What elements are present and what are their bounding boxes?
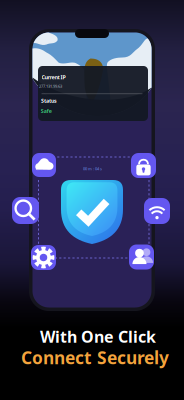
staticText: 00 m : 04 s [83,166,102,171]
staticText: Connect Securely [21,346,169,369]
button[interactable]: Search [12,197,39,224]
staticText: 277.131.99.63 [39,84,62,89]
button[interactable]: Network [144,198,170,224]
staticText: Current IP [42,74,66,81]
button[interactable]: Settings [31,245,56,270]
button[interactable]: Cloud [32,153,56,177]
staticText: With One Click [40,326,156,347]
button[interactable]: Account [129,244,154,269]
button[interactable]: Security [131,153,156,178]
staticText: Safe [41,107,52,114]
staticText: Status [41,97,57,104]
